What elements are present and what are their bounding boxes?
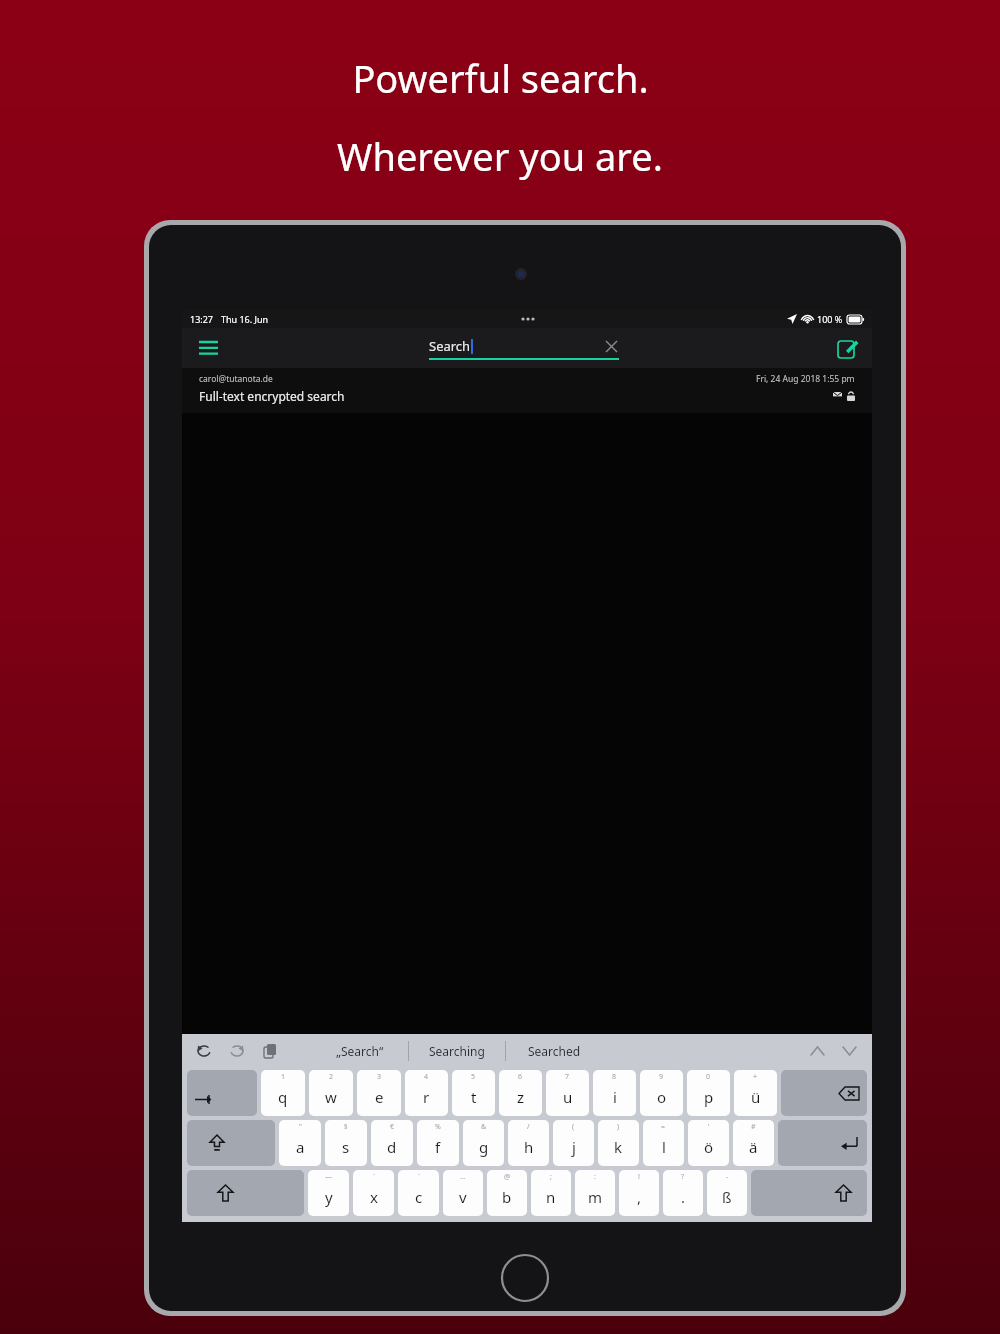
button[interactable]: Tab	[187, 1070, 257, 1116]
staticText: 2	[329, 1072, 334, 1082]
button[interactable]: /	[508, 1120, 549, 1166]
staticText: 1	[281, 1072, 286, 1082]
staticText: ß	[722, 1187, 732, 1207]
button[interactable]: Shift	[187, 1170, 304, 1216]
button[interactable]: "	[279, 1120, 321, 1166]
button[interactable]: Redo	[225, 1039, 249, 1063]
button[interactable]: Searching	[409, 1034, 505, 1068]
button[interactable]: 9	[640, 1070, 683, 1116]
staticText: n	[546, 1187, 556, 1207]
staticText: o	[657, 1087, 667, 1107]
button[interactable]: €	[371, 1120, 413, 1166]
button[interactable]: 7	[546, 1070, 589, 1116]
staticText: „Search“	[336, 1043, 384, 1059]
staticText: ;	[550, 1172, 552, 1182]
button[interactable]: 1	[261, 1070, 305, 1116]
button[interactable]: '	[688, 1120, 729, 1166]
button[interactable]: ´	[398, 1170, 439, 1216]
staticText: :	[594, 1172, 596, 1182]
staticText: t	[471, 1087, 477, 1107]
staticText: '	[708, 1122, 710, 1132]
staticText: 8	[612, 1072, 617, 1082]
staticText: z	[517, 1087, 525, 1107]
staticText: 3	[377, 1072, 382, 1082]
button[interactable]: 0	[687, 1070, 730, 1116]
staticText: &	[481, 1122, 487, 1132]
staticText: ä	[749, 1137, 758, 1157]
staticText: Thu 16. Jun	[221, 313, 269, 325]
staticText: %	[435, 1122, 441, 1132]
button[interactable]: Backspace	[781, 1070, 867, 1116]
staticText: Fri, 24 Aug 2018 1:55 pm	[756, 373, 855, 385]
button[interactable]: Previous	[804, 1038, 830, 1064]
button[interactable]: 8	[593, 1070, 636, 1116]
staticText: carol@tutanota.de	[199, 373, 273, 385]
button[interactable]: 2	[309, 1070, 353, 1116]
button[interactable]: ...	[443, 1170, 483, 1216]
staticText: k	[614, 1137, 623, 1157]
button[interactable]: @	[487, 1170, 527, 1216]
staticText: e	[375, 1087, 384, 1107]
staticText: y	[325, 1187, 333, 1207]
staticText: g	[479, 1137, 489, 1157]
staticText: p	[704, 1087, 714, 1107]
staticText: s	[342, 1137, 350, 1157]
button[interactable]: Compose	[832, 333, 862, 363]
staticText: q	[278, 1087, 288, 1107]
staticText: (	[572, 1122, 575, 1132]
staticText: j	[572, 1137, 576, 1157]
staticText: ...	[460, 1172, 466, 1182]
button[interactable]: #	[733, 1120, 774, 1166]
button[interactable]: +	[734, 1070, 777, 1116]
staticText: w	[325, 1087, 337, 1107]
button[interactable]: &	[463, 1120, 504, 1166]
button[interactable]: :	[575, 1170, 615, 1216]
button[interactable]: Paste	[258, 1039, 282, 1063]
button[interactable]: =	[643, 1120, 684, 1166]
button[interactable]: Search	[429, 337, 619, 360]
button[interactable]: Next	[836, 1038, 862, 1064]
staticText: u	[563, 1087, 573, 1107]
staticText: Search	[429, 337, 471, 355]
button[interactable]: %	[417, 1120, 459, 1166]
button[interactable]: `	[353, 1170, 394, 1216]
button[interactable]: !	[619, 1170, 659, 1216]
button[interactable]: §	[325, 1120, 367, 1166]
button[interactable]: Shift right	[751, 1170, 867, 1216]
button[interactable]: 4	[405, 1070, 448, 1116]
button[interactable]: „Search“	[312, 1034, 408, 1068]
staticText: v	[459, 1187, 467, 1207]
button[interactable]: -	[707, 1170, 747, 1216]
staticText: €	[390, 1122, 395, 1132]
staticText: 100 %	[817, 313, 843, 325]
staticText: 13:27	[190, 313, 214, 325]
staticText: c	[415, 1187, 423, 1207]
button[interactable]: 6	[499, 1070, 542, 1116]
staticText: Searching	[429, 1043, 485, 1059]
staticText: 6	[518, 1072, 523, 1082]
button[interactable]: 5	[452, 1070, 495, 1116]
button[interactable]: ?	[663, 1170, 703, 1216]
button[interactable]: carol@tutanota.de	[182, 368, 872, 413]
staticText: l	[662, 1137, 666, 1157]
staticText: b	[502, 1187, 512, 1207]
button[interactable]: )	[598, 1120, 639, 1166]
button[interactable]: Caps lock	[187, 1120, 275, 1166]
button[interactable]: Searched	[506, 1034, 602, 1068]
staticText: Powerful search.	[352, 52, 649, 104]
button[interactable]: Enter	[778, 1120, 867, 1166]
staticText: =	[661, 1122, 666, 1132]
button[interactable]: 3	[357, 1070, 401, 1116]
button[interactable]: ;	[531, 1170, 571, 1216]
staticText: Full-text encrypted search	[199, 388, 345, 404]
staticText: ö	[704, 1137, 714, 1157]
button[interactable]: Menu	[192, 332, 224, 364]
staticText: )	[617, 1122, 620, 1132]
staticText: f	[435, 1137, 441, 1157]
staticText: d	[387, 1137, 397, 1157]
button[interactable]: Undo	[192, 1039, 216, 1063]
button[interactable]: —	[308, 1170, 349, 1216]
staticText: /	[527, 1122, 530, 1132]
staticText: Searched	[528, 1043, 581, 1059]
button[interactable]: (	[553, 1120, 594, 1166]
